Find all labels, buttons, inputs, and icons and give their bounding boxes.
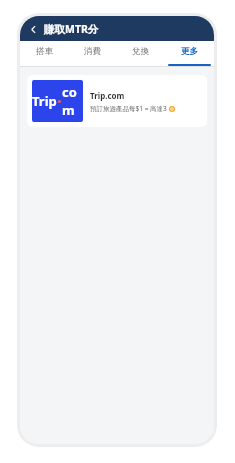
button[interactable]: Back — [25, 21, 41, 37]
staticText: com — [62, 83, 83, 119]
button[interactable]: 消費 — [68, 41, 116, 66]
staticText: Trip.com — [90, 90, 125, 101]
staticText: 更多 — [181, 46, 198, 57]
staticText: Trip — [32, 92, 57, 110]
staticText: 賺取MTR分 — [44, 22, 99, 36]
staticText: 消費 — [84, 46, 101, 57]
button[interactable]: 賺取MTR分 — [44, 22, 99, 36]
staticText: 兌換 — [132, 46, 149, 57]
staticText: 預訂旅遊產品每$1 = 高達3 — [90, 104, 167, 113]
button[interactable]: Trip — [27, 75, 207, 127]
button[interactable]: 更多 — [165, 41, 214, 66]
staticText: 搭車 — [36, 46, 53, 57]
button[interactable]: 兌換 — [116, 41, 165, 66]
button[interactable]: 搭車 — [20, 41, 68, 66]
